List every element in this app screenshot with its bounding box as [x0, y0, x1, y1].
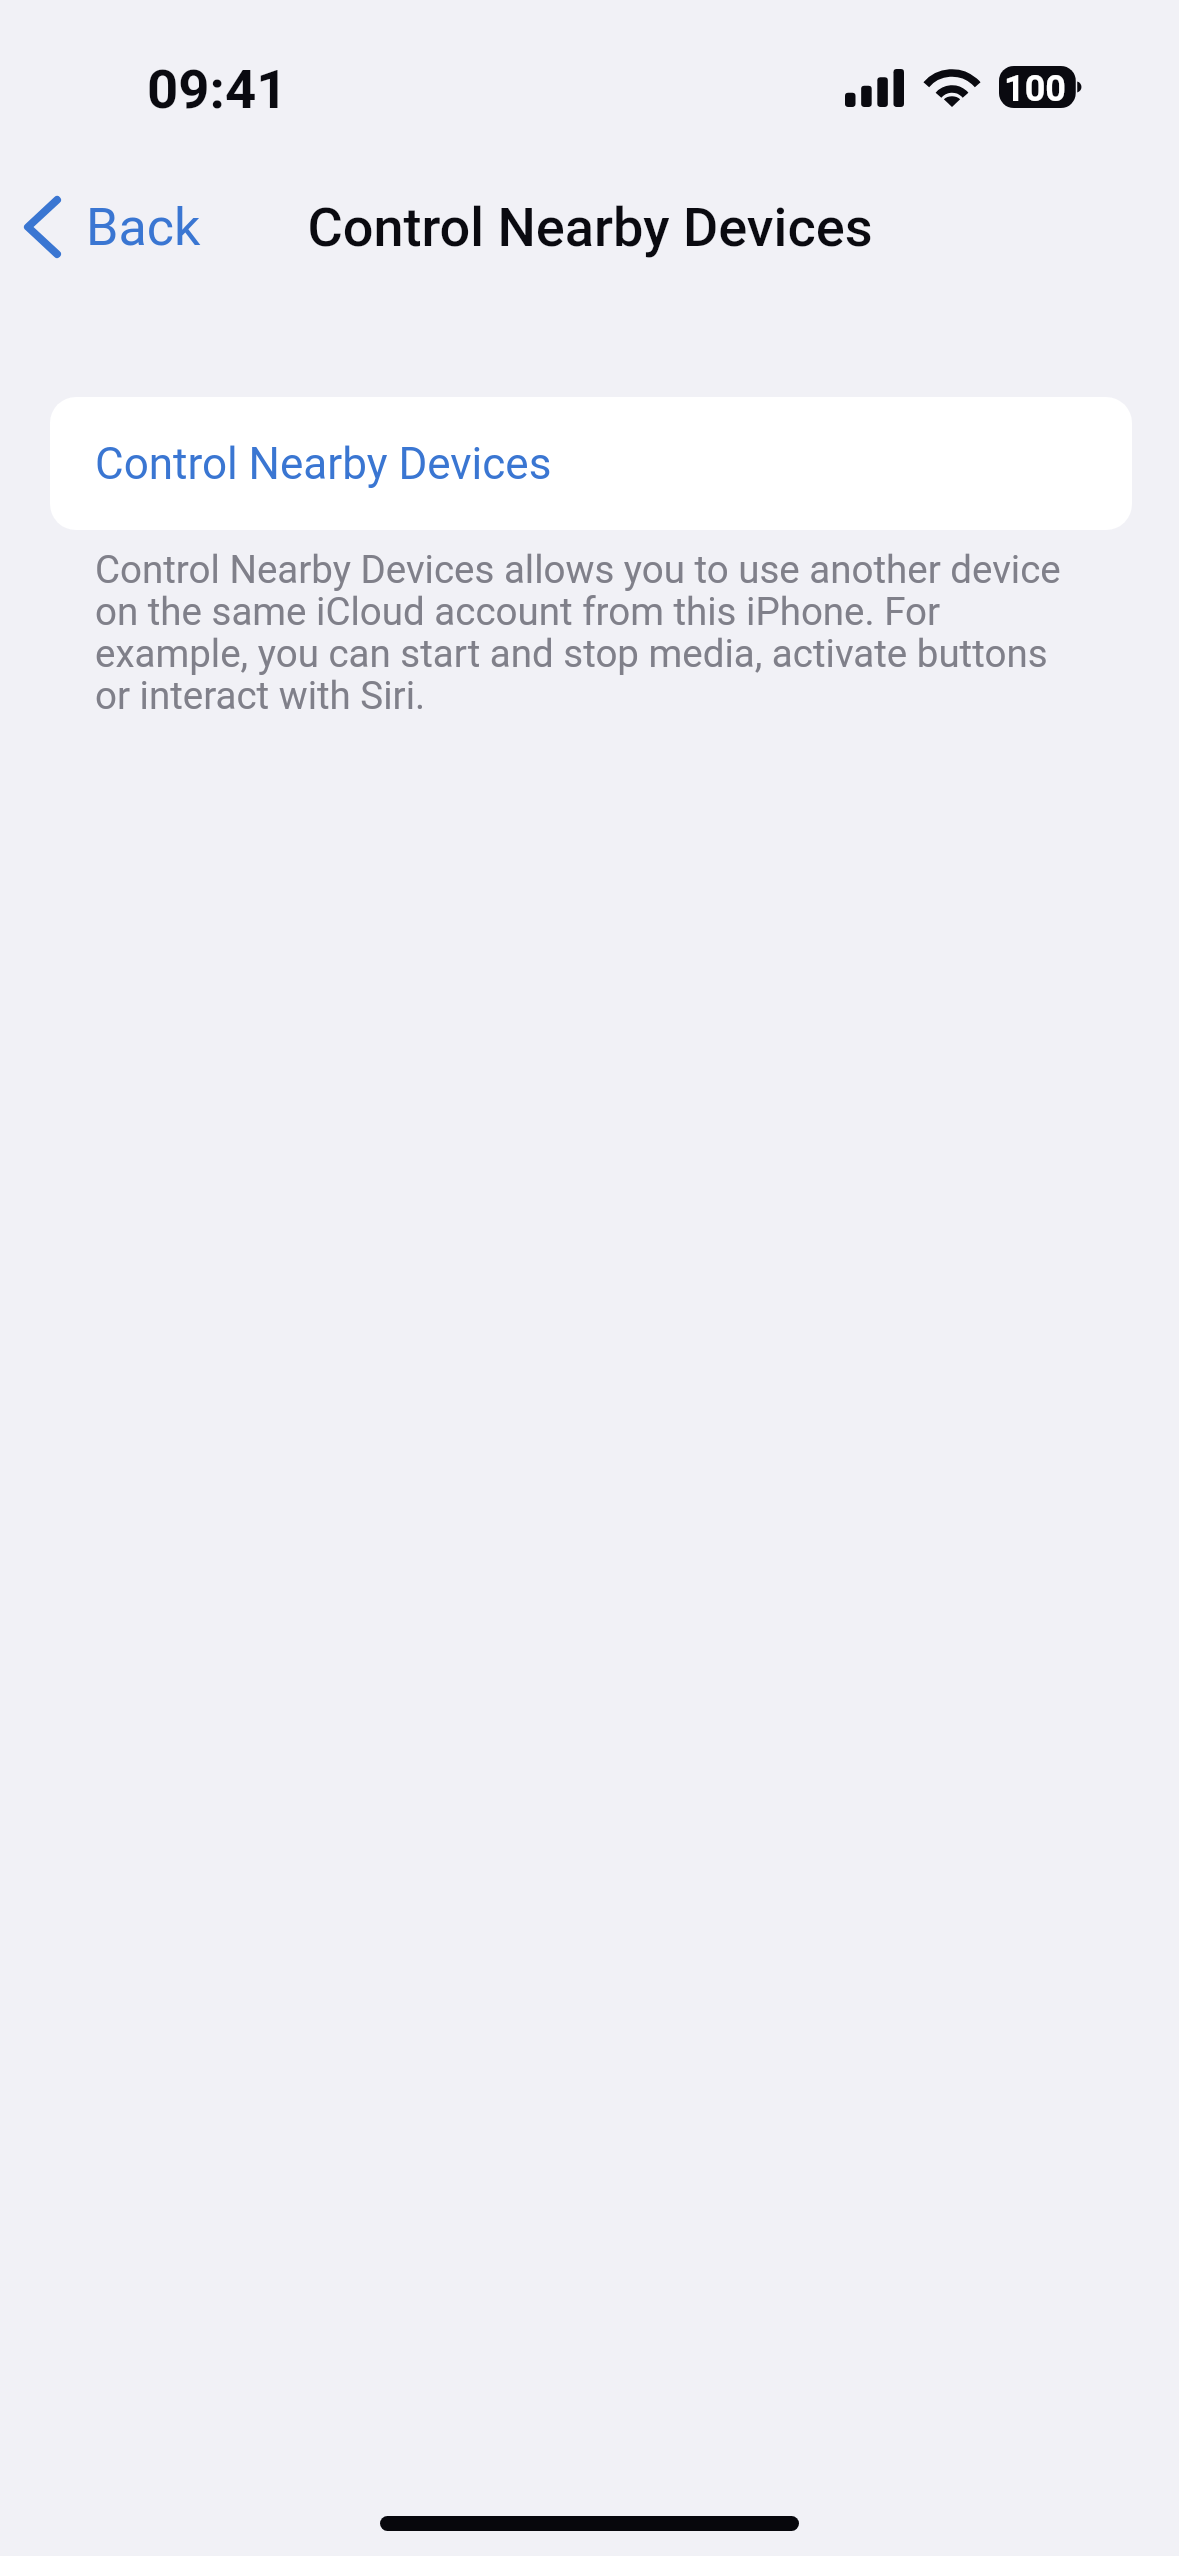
staticText: Control Nearby Devices allows you to use…: [95, 550, 1085, 718]
staticText: Control Nearby Devices: [95, 439, 552, 489]
button[interactable]: Back: [6, 190, 225, 264]
staticText: 09:41: [147, 59, 288, 121]
other: Back: [24, 196, 61, 258]
staticText: 100: [1004, 72, 1066, 109]
staticText: Back: [86, 196, 201, 258]
staticText: Control Nearby Devices: [307, 200, 873, 258]
button[interactable]: Control Nearby Devices: [50, 397, 1132, 530]
